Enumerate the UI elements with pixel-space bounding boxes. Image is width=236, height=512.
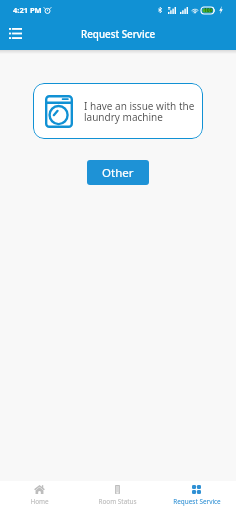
button[interactable]: Room Status bbox=[78, 481, 157, 512]
staticText: 100 bbox=[204, 7, 213, 14]
button[interactable]: Other bbox=[87, 160, 149, 185]
staticText: Request Service bbox=[173, 497, 221, 506]
button[interactable]: I have an issue with the laundry machine bbox=[33, 83, 203, 139]
staticText: Room Status bbox=[98, 497, 137, 506]
staticText: I have an issue with the laundry machine bbox=[84, 99, 195, 124]
button[interactable]: Home bbox=[0, 481, 78, 512]
staticText: Other bbox=[102, 165, 134, 181]
staticText: Request Service bbox=[81, 28, 156, 41]
staticText: 4:21 PM bbox=[13, 5, 42, 15]
staticText: Home bbox=[30, 497, 49, 506]
button[interactable]: Open navigation menu bbox=[3, 21, 27, 45]
button[interactable]: Request Service bbox=[157, 481, 236, 512]
